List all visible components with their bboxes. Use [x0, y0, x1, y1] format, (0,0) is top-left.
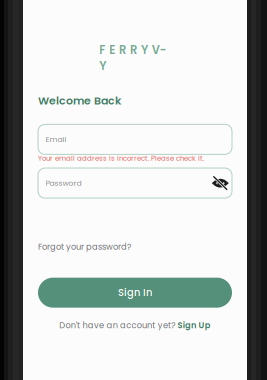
button[interactable]: Show password: [212, 176, 228, 191]
staticText: Sign In: [118, 286, 152, 299]
staticText: Sign Up: [177, 320, 211, 331]
staticText: Email: [45, 134, 66, 145]
button[interactable]: Forgot your password?: [38, 239, 131, 255]
staticText: FERRYVY: [99, 42, 171, 58]
button[interactable]: Sign In: [38, 278, 232, 308]
staticText: Password: [45, 178, 81, 188]
staticText: Forgot your password?: [38, 241, 131, 253]
staticText: Don't have an account yet?: [59, 320, 177, 331]
staticText: Welcome Back: [38, 93, 121, 108]
staticText: Your email address is incorrect. Please …: [38, 153, 204, 163]
button[interactable]: Sign Up: [177, 320, 211, 331]
